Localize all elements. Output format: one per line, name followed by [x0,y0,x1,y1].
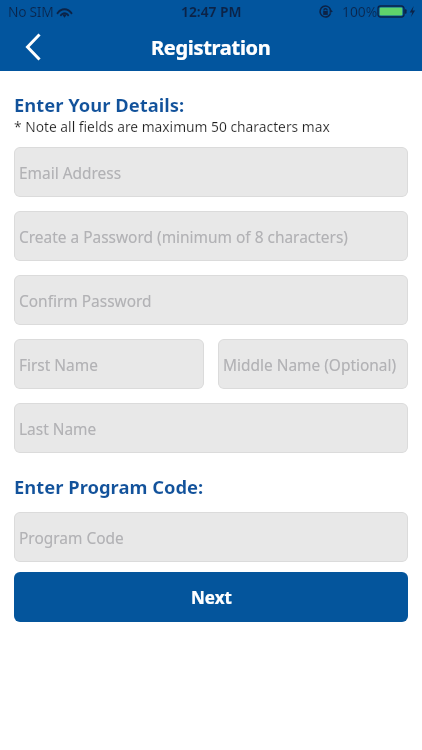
staticText: Next [191,586,232,609]
button[interactable]: First Name [14,339,204,389]
button[interactable]: Next [14,572,408,622]
button[interactable]: Middle Name (Optional) [218,339,408,389]
staticText: Enter Program Code: [14,474,204,499]
button[interactable]: Create a Password (minimum of 8 characte… [14,211,408,261]
button[interactable]: Email Address [14,147,408,197]
button[interactable]: Program Code [14,512,408,562]
button[interactable]: Back [0,22,52,71]
button[interactable]: Confirm Password [14,275,408,325]
staticText: * Note all fields are maximum 50 charact… [14,117,330,136]
staticText: Confirm Password [19,290,152,311]
staticText: Middle Name (Optional) [223,354,397,375]
button[interactable]: Last Name [14,403,408,453]
staticText: First Name [19,354,98,375]
staticText: 100% [342,2,378,21]
staticText: Email Address [19,162,122,183]
staticText: No SIM [8,2,54,21]
staticText: Enter Your Details: [14,92,185,117]
staticText: Last Name [19,418,97,439]
staticText: 12:47 PM [181,2,242,21]
staticText: Create a Password (minimum of 8 characte… [19,226,348,247]
staticText: Registration [151,34,271,61]
staticText: Program Code [19,527,124,548]
